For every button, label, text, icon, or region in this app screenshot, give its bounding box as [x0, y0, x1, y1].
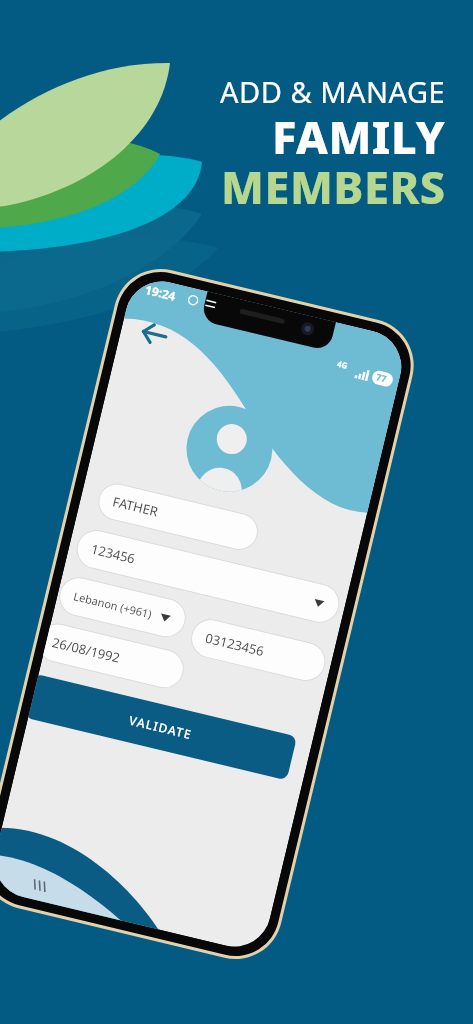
button[interactable]: Add and manage family members	[0, 0, 473, 1024]
